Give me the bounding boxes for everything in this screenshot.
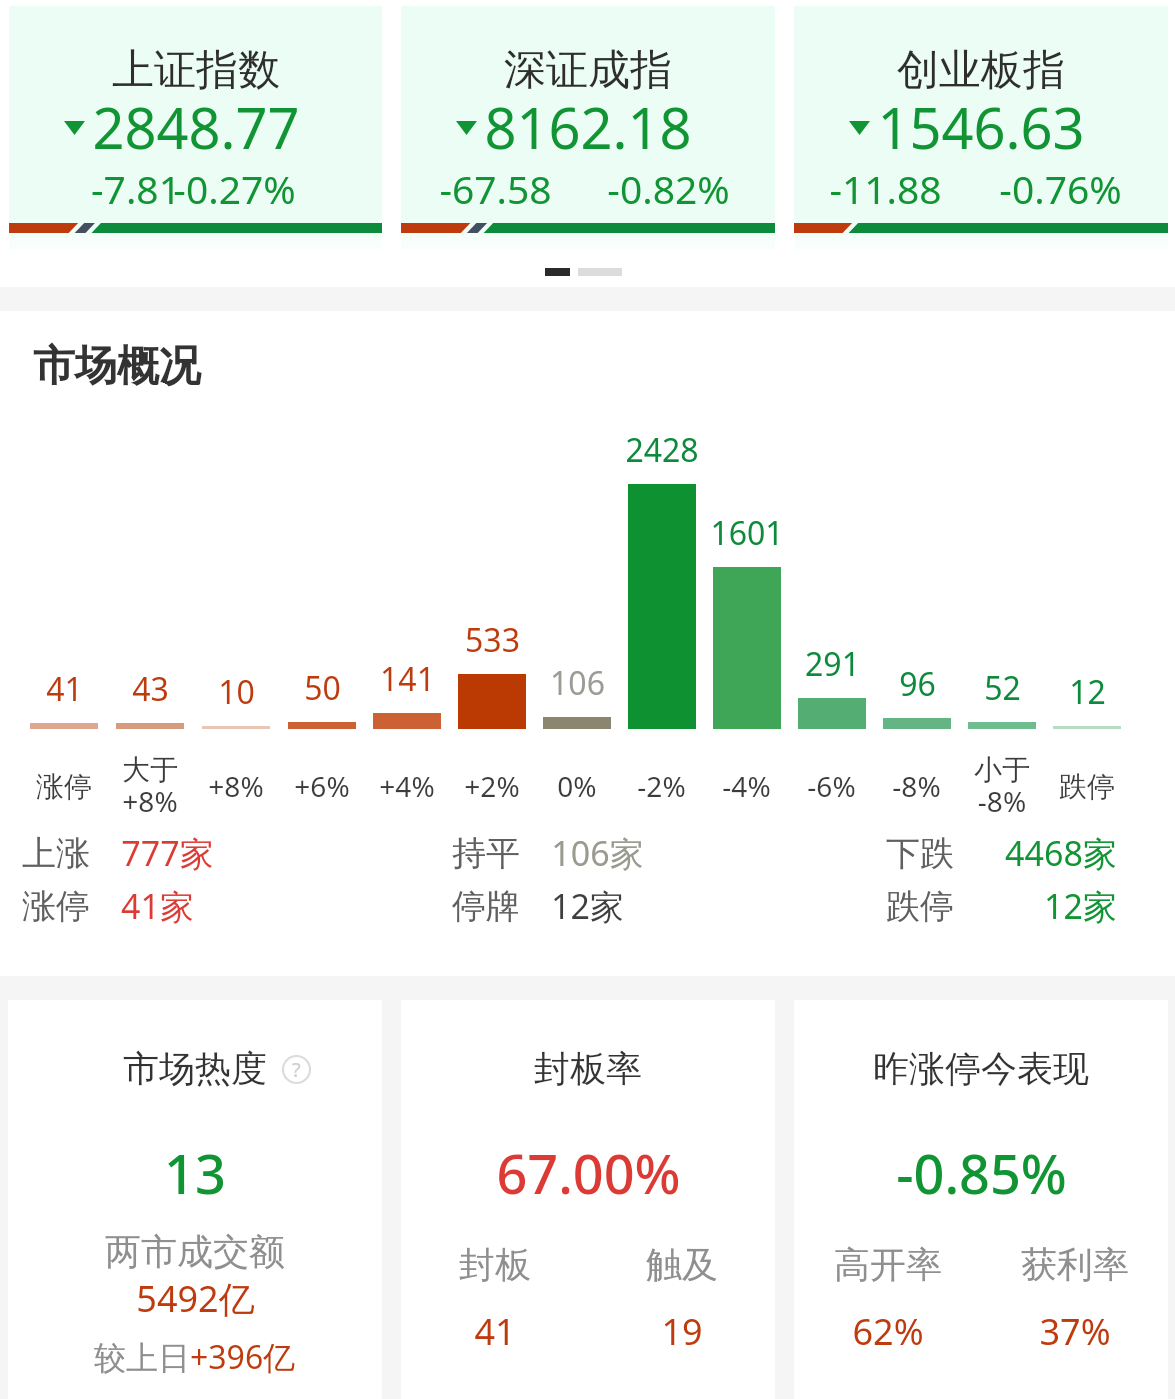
staticText: 67.00% — [496, 1136, 681, 1210]
staticText: ? — [292, 1056, 301, 1083]
staticText: -67.58 — [439, 162, 552, 215]
staticText: 2848.77 — [92, 89, 300, 165]
staticText: 12 — [1069, 670, 1106, 714]
staticText: 533 — [465, 618, 520, 662]
staticText: 106 — [550, 661, 605, 705]
staticText: 创业板指 — [897, 44, 1065, 97]
staticText: 持平 — [452, 832, 520, 875]
staticText: 12家 — [1044, 883, 1117, 929]
staticText: +2% — [464, 767, 520, 805]
staticText: +6% — [294, 767, 350, 805]
button[interactable]: 创业板指 — [794, 6, 1168, 250]
staticText: -8% — [892, 767, 941, 805]
staticText: 1546.63 — [877, 89, 1085, 165]
button[interactable]: 市场热度说明 — [282, 1055, 311, 1084]
button[interactable]: 106 — [534, 407, 619, 825]
staticText: -6% — [807, 767, 856, 805]
button[interactable]: 2428 — [619, 407, 704, 825]
staticText: 触及 — [646, 1242, 718, 1287]
staticText: 上证指数 — [112, 44, 280, 97]
staticText: -11.88 — [829, 162, 942, 215]
button[interactable]: 141 — [364, 407, 449, 825]
staticText: -0.82% — [607, 162, 730, 215]
staticText: 41 — [474, 1307, 516, 1356]
staticText: 37% — [1039, 1307, 1111, 1356]
staticText: 1601 — [710, 511, 784, 555]
staticText: -0.76% — [999, 162, 1122, 215]
staticText: 获利率 — [1021, 1242, 1129, 1287]
staticText: 96 — [899, 662, 936, 706]
staticText: 停牌 — [452, 885, 520, 928]
staticText: 跌停 — [1059, 769, 1115, 804]
staticText: -7.81 — [91, 162, 181, 215]
staticText: +8% — [208, 767, 264, 805]
staticText: -0.85% — [896, 1136, 1067, 1210]
staticText: 封板 — [459, 1242, 531, 1287]
staticText: 上涨 — [22, 832, 90, 875]
staticText: -2% — [637, 767, 686, 805]
staticText: 41 — [46, 667, 83, 711]
button[interactable]: 10 — [193, 407, 279, 825]
staticText: 市场热度 — [123, 1046, 267, 1091]
staticText: 62% — [852, 1307, 924, 1356]
staticText: 13 — [164, 1136, 226, 1210]
staticText: 43 — [132, 667, 169, 711]
button[interactable]: 50 — [279, 407, 364, 825]
staticText: 封板率 — [534, 1046, 642, 1091]
staticText: 50 — [304, 666, 341, 710]
button[interactable]: 市场概况 — [0, 340, 201, 393]
staticText: 777家 — [121, 830, 214, 876]
button[interactable]: 1601 — [704, 407, 789, 825]
staticText: 4468家 — [1005, 830, 1117, 876]
button[interactable]: 43 — [107, 407, 193, 825]
button[interactable]: 41 — [21, 407, 107, 825]
staticText: -0.27% — [173, 162, 296, 215]
staticText: 12家 — [551, 883, 624, 929]
staticText: 跌停 — [886, 885, 954, 928]
staticText: 两市成交额 — [105, 1229, 285, 1274]
button[interactable]: 市场热度 — [8, 1000, 382, 1399]
staticText: 19 — [661, 1307, 703, 1356]
staticText: 8162.18 — [484, 89, 692, 165]
button[interactable]: 533 — [449, 407, 534, 825]
staticText: 141 — [380, 657, 435, 701]
staticText: 52 — [984, 666, 1021, 710]
button[interactable]: 封板率 — [401, 1000, 775, 1399]
staticText: 高开率 — [834, 1242, 942, 1287]
staticText: 291 — [805, 642, 860, 686]
staticText: 41家 — [121, 883, 194, 929]
staticText: 较上日+396亿 — [94, 1335, 296, 1379]
staticText: 大于 +8% — [122, 752, 178, 820]
staticText: 5492亿 — [136, 1274, 255, 1323]
staticText: 深证成指 — [504, 44, 672, 97]
button[interactable]: 12 — [1044, 407, 1129, 825]
button[interactable]: 昨涨停今表现 — [794, 1000, 1168, 1399]
staticText: 涨停 — [22, 885, 90, 928]
button[interactable]: 深证成指 — [401, 6, 775, 250]
staticText: 下跌 — [886, 832, 954, 875]
button[interactable]: 291 — [789, 407, 874, 825]
staticText: +4% — [379, 767, 435, 805]
staticText: 小于 -8% — [974, 752, 1030, 820]
staticText: 10 — [218, 670, 255, 714]
button[interactable]: 上证指数 — [9, 6, 382, 250]
staticText: 0% — [557, 767, 597, 805]
staticText: 2428 — [625, 428, 699, 472]
staticText: -4% — [722, 767, 771, 805]
staticText: 106家 — [551, 830, 644, 876]
button[interactable]: 52 — [959, 407, 1044, 825]
button[interactable]: 96 — [874, 407, 959, 825]
staticText: 昨涨停今表现 — [873, 1046, 1089, 1091]
staticText: 涨停 — [36, 769, 92, 804]
